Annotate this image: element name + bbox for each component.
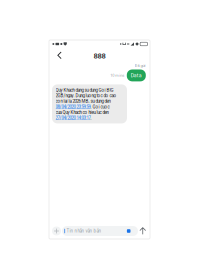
staticText: 2GB/ngay. Dung luong toc do cao [56, 93, 117, 98]
button[interactable]: Data [127, 69, 146, 81]
staticText: 888 [93, 51, 105, 60]
staticText: Quy Khach dang su dung Goi BIG [56, 88, 114, 93]
button[interactable]: Add attachment [52, 226, 61, 235]
staticText: cua Quy Khach co hieu luc den [56, 110, 109, 115]
button[interactable]: 888 [93, 48, 105, 61]
staticText: . Goi cuoc [91, 104, 110, 109]
staticText: 27/04/2020 14:03:17 [56, 115, 91, 120]
staticText: 08/04/2020 23:59:59 [56, 104, 91, 109]
staticText: Data [131, 72, 142, 78]
button[interactable]: Tin nhắn văn bản [62, 226, 138, 236]
button[interactable]: Back [52, 48, 67, 61]
button[interactable]: Quy Khach dang su dung Goi BIG [52, 84, 127, 123]
button[interactable]: Send [138, 226, 147, 236]
staticText: Tin nhắn văn bản [66, 228, 101, 234]
staticText: . [91, 115, 92, 120]
staticText: 10 mins [110, 73, 124, 78]
staticText: con lai la 2026 MB, su dung den [56, 99, 111, 104]
staticText: Đã gửi [134, 63, 145, 68]
